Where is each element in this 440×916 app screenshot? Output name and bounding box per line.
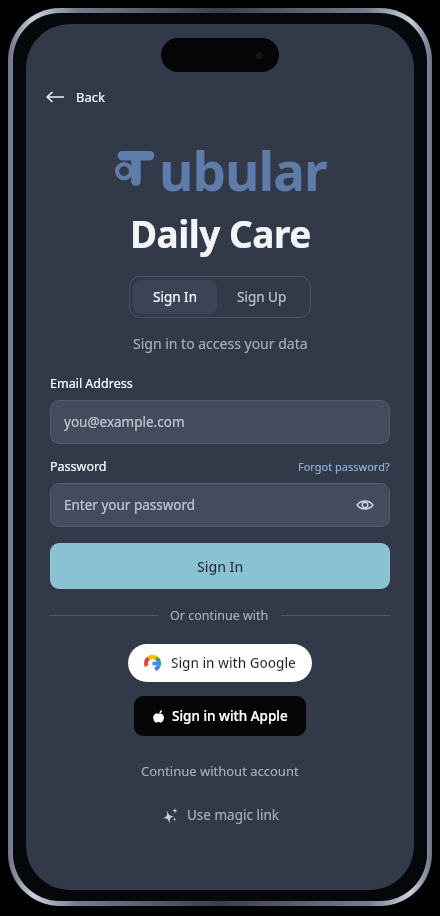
button[interactable]: Use magic link bbox=[149, 802, 291, 828]
staticText: Continue without account bbox=[141, 762, 299, 780]
staticText: Daily Care bbox=[130, 208, 311, 258]
button[interactable]: Show password bbox=[354, 494, 376, 516]
button[interactable]: Sign In bbox=[133, 280, 217, 314]
button[interactable]: Back bbox=[26, 82, 414, 112]
button[interactable]: you@example.com bbox=[50, 400, 390, 444]
staticText: Sign In bbox=[197, 557, 244, 576]
button[interactable]: Sign Up bbox=[217, 280, 307, 314]
staticText: Use magic link bbox=[187, 806, 279, 824]
staticText: Forgot password? bbox=[298, 459, 390, 474]
button[interactable]: Continue without account bbox=[129, 758, 311, 784]
button[interactable]: Enter your password bbox=[50, 483, 390, 527]
button[interactable]: Forgot password? bbox=[298, 459, 390, 474]
staticText: Sign In bbox=[153, 288, 197, 306]
staticText: Enter your password bbox=[64, 496, 354, 514]
staticText: you@example.com bbox=[64, 413, 376, 431]
staticText: Or continue with bbox=[170, 607, 269, 624]
staticText: Email Address bbox=[50, 375, 133, 392]
staticText: Sign in with Google bbox=[171, 654, 296, 672]
staticText: Password bbox=[50, 458, 107, 475]
staticText: Sign in to access your data bbox=[133, 334, 308, 353]
staticText: Sign Up bbox=[237, 288, 287, 306]
staticText: Back bbox=[76, 88, 105, 106]
button[interactable]: Sign In bbox=[50, 543, 390, 589]
staticText: ubular bbox=[159, 134, 327, 206]
button[interactable]: Sign in with Google bbox=[128, 644, 312, 682]
staticText: Sign in with Apple bbox=[172, 707, 288, 725]
button[interactable]: Sign in with Apple bbox=[134, 696, 306, 736]
